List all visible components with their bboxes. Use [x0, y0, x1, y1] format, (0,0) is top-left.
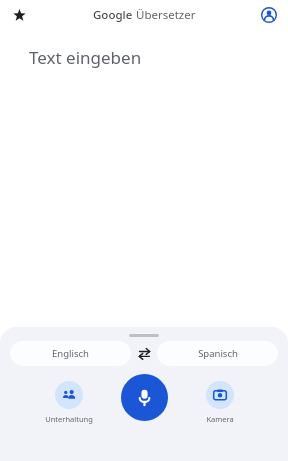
staticText: Englisch	[52, 347, 89, 360]
button[interactable]: Kamera	[188, 373, 252, 424]
button[interactable]: Unterhaltung	[37, 373, 101, 424]
button[interactable]: Sprachen tauschen	[131, 341, 157, 366]
button[interactable]: Mikrofon	[121, 374, 168, 421]
button[interactable]: Englisch	[10, 341, 131, 366]
staticText: Kamera	[206, 414, 234, 424]
button[interactable]: Konto	[257, 3, 281, 27]
staticText: Google	[93, 7, 133, 23]
staticText: Übersetzer	[136, 7, 196, 23]
staticText: Text eingeben	[29, 46, 142, 69]
staticText: Spanisch	[198, 347, 238, 360]
staticText: Unterhaltung	[45, 414, 93, 424]
button[interactable]: Favoriten	[6, 2, 32, 28]
button[interactable]: Spanisch	[157, 341, 278, 366]
button[interactable]: Text eingeben	[0, 30, 288, 327]
